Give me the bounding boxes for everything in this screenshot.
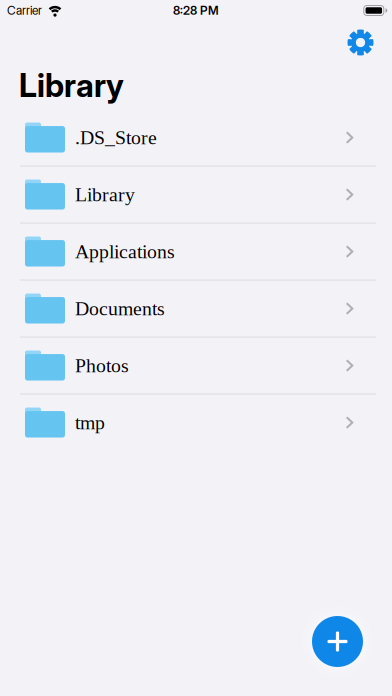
staticText: .DS_Store bbox=[75, 127, 157, 148]
button[interactable]: Settings bbox=[348, 30, 373, 55]
staticText: 8:28 PM bbox=[173, 3, 219, 18]
button[interactable]: Photos bbox=[0, 337, 392, 394]
button[interactable]: Add bbox=[312, 616, 363, 667]
staticText: Photos bbox=[75, 355, 129, 376]
button[interactable]: .DS_Store bbox=[0, 109, 392, 166]
button[interactable]: tmp bbox=[0, 394, 392, 451]
staticText: Carrier bbox=[7, 3, 42, 18]
staticText: tmp bbox=[75, 412, 105, 433]
button[interactable]: Applications bbox=[0, 223, 392, 280]
staticText: Library bbox=[19, 66, 124, 104]
staticText: Documents bbox=[75, 298, 165, 319]
button[interactable]: Library bbox=[0, 166, 392, 223]
button[interactable]: Documents bbox=[0, 280, 392, 337]
staticText: Applications bbox=[75, 241, 175, 262]
staticText: Library bbox=[75, 184, 135, 205]
